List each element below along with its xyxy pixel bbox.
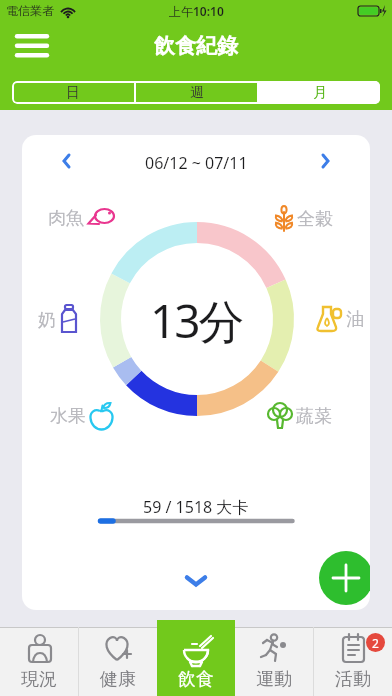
- staticText: 月: [313, 84, 327, 102]
- staticText: 全穀: [297, 208, 333, 231]
- button[interactable]: 週: [136, 81, 257, 104]
- button[interactable]: 飲食: [157, 620, 235, 696]
- button[interactable]: [319, 551, 370, 605]
- staticText: 06/12 ~ 07/11: [145, 152, 248, 174]
- staticText: 健康: [100, 668, 136, 691]
- staticText: 活動: [335, 668, 371, 691]
- staticText: 油: [346, 308, 364, 331]
- staticText: 水果: [50, 405, 86, 428]
- button[interactable]: 現況: [0, 627, 78, 696]
- button[interactable]: 日: [12, 81, 134, 104]
- button[interactable]: 月: [259, 81, 380, 104]
- staticText: 飲食: [178, 668, 214, 691]
- staticText: 59 / 1518 大卡: [143, 496, 249, 518]
- staticText: 奶: [38, 309, 56, 332]
- staticText: 現況: [21, 668, 57, 691]
- staticText: 日: [66, 84, 80, 102]
- staticText: 上午10:10: [169, 3, 224, 19]
- button[interactable]: [17, 34, 47, 58]
- button[interactable]: [318, 153, 332, 169]
- button[interactable]: 活動: [314, 627, 392, 696]
- button[interactable]: [185, 575, 207, 587]
- staticText: 運動: [256, 668, 292, 691]
- staticText: 蔬菜: [296, 405, 332, 428]
- staticText: 週: [190, 84, 204, 102]
- button[interactable]: [60, 153, 74, 169]
- staticText: 肉魚: [48, 207, 84, 230]
- staticText: 2: [372, 635, 379, 651]
- staticText: 飲食紀錄: [154, 33, 238, 59]
- button[interactable]: 健康: [79, 627, 157, 696]
- staticText: 電信業者: [6, 3, 54, 18]
- button[interactable]: 運動: [235, 627, 313, 696]
- staticText: 13分: [150, 289, 243, 352]
